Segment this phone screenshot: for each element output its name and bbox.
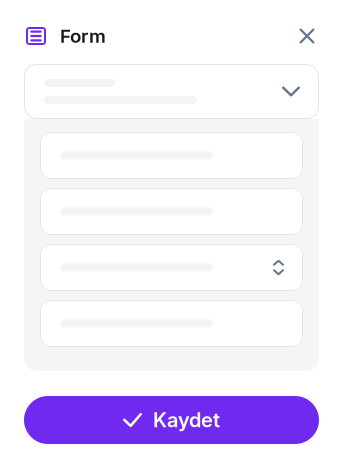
- button[interactable]: Kaydet: [24, 396, 319, 444]
- button[interactable]: [40, 300, 303, 347]
- button[interactable]: [24, 64, 319, 119]
- button[interactable]: [40, 188, 303, 235]
- staticText: Form: [60, 25, 106, 47]
- staticText: Kaydet: [153, 408, 220, 432]
- button[interactable]: [40, 244, 303, 291]
- button[interactable]: [40, 132, 303, 179]
- button[interactable]: Close: [292, 21, 322, 51]
